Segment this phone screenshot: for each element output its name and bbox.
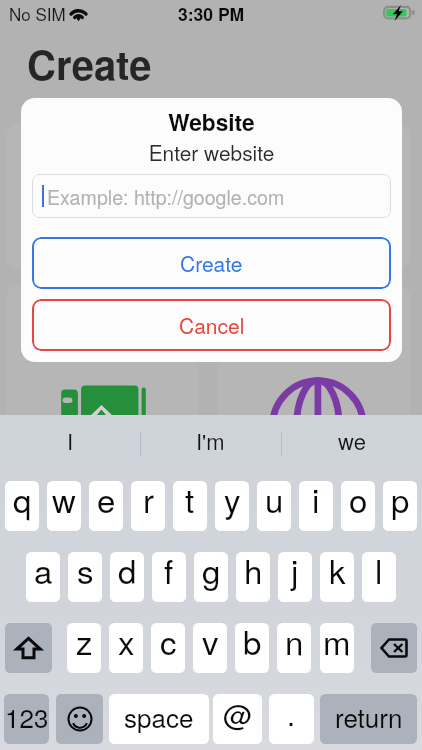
- staticText: a: [34, 552, 53, 593]
- staticText: I'm: [196, 425, 225, 457]
- staticText: 123: [5, 698, 49, 735]
- button[interactable]: l: [362, 552, 396, 602]
- button[interactable]: c: [151, 623, 185, 673]
- button[interactable]: I: [0, 415, 140, 459]
- staticText: Create: [180, 248, 243, 278]
- staticText: Enter website: [21, 137, 402, 167]
- button[interactable]: k: [320, 552, 354, 602]
- staticText: c: [160, 623, 177, 664]
- button[interactable]: y: [215, 481, 249, 531]
- button[interactable]: Backspace: [371, 623, 417, 673]
- staticText: No SIM: [9, 1, 66, 25]
- staticText: l: [375, 552, 383, 593]
- staticText: return: [335, 698, 403, 735]
- staticText: u: [265, 481, 284, 522]
- staticText: x: [118, 623, 135, 664]
- button[interactable]: [6, 124, 199, 270]
- button[interactable]: a: [26, 552, 60, 602]
- staticText: @: [223, 694, 253, 735]
- staticText: n: [285, 623, 304, 664]
- staticText: r: [143, 481, 154, 522]
- button[interactable]: Create: [32, 237, 391, 289]
- button[interactable]: t: [173, 481, 207, 531]
- staticText: f: [164, 552, 174, 593]
- staticText: I: [67, 425, 74, 457]
- button[interactable]: i: [299, 481, 333, 531]
- button[interactable]: w: [47, 481, 81, 531]
- button[interactable]: I'm: [140, 415, 281, 459]
- button[interactable]: q: [5, 481, 39, 531]
- button[interactable]: 123: [4, 694, 49, 744]
- staticText: w: [52, 481, 76, 522]
- button[interactable]: b: [235, 623, 269, 673]
- button[interactable]: z: [67, 623, 101, 673]
- staticText: Example: http://google.com: [47, 182, 285, 210]
- staticText: Create: [27, 35, 152, 92]
- button[interactable]: n: [277, 623, 311, 673]
- button[interactable]: j: [278, 552, 312, 602]
- button[interactable]: g: [194, 552, 228, 602]
- staticText: d: [118, 552, 137, 593]
- button[interactable]: [6, 285, 199, 431]
- button[interactable]: [217, 124, 411, 270]
- button[interactable]: v: [193, 623, 227, 673]
- button[interactable]: return: [320, 694, 417, 744]
- button[interactable]: .: [269, 694, 314, 744]
- staticText: y: [224, 481, 241, 522]
- button[interactable]: o: [341, 481, 375, 531]
- staticText: g: [202, 552, 221, 593]
- button[interactable]: [217, 285, 411, 431]
- button[interactable]: d: [110, 552, 144, 602]
- button[interactable]: f: [152, 552, 186, 602]
- staticText: we: [338, 425, 366, 457]
- staticText: j: [291, 552, 299, 593]
- button[interactable]: u: [257, 481, 291, 531]
- button[interactable]: we: [281, 415, 422, 459]
- staticText: b: [243, 623, 262, 664]
- staticText: v: [202, 623, 219, 664]
- button[interactable]: Example: http://google.com: [32, 174, 391, 218]
- button[interactable]: m: [320, 623, 354, 673]
- button[interactable]: Emoji: [56, 694, 103, 744]
- staticText: i: [312, 481, 320, 522]
- staticText: t: [185, 481, 195, 522]
- staticText: p: [391, 481, 410, 522]
- staticText: m: [323, 623, 351, 664]
- staticText: .: [287, 694, 296, 735]
- button[interactable]: space: [109, 694, 209, 744]
- staticText: 3:30 PM: [178, 1, 245, 26]
- staticText: k: [329, 552, 346, 593]
- button[interactable]: s: [68, 552, 102, 602]
- staticText: z: [76, 623, 93, 664]
- button[interactable]: r: [131, 481, 165, 531]
- staticText: space: [124, 698, 194, 735]
- button[interactable]: h: [236, 552, 270, 602]
- button[interactable]: x: [109, 623, 143, 673]
- staticText: e: [97, 481, 116, 522]
- staticText: o: [349, 481, 368, 522]
- button[interactable]: p: [383, 481, 417, 531]
- staticText: s: [77, 552, 94, 593]
- staticText: Website: [21, 105, 402, 138]
- button[interactable]: @: [213, 694, 262, 744]
- staticText: Cancel: [179, 310, 245, 340]
- staticText: h: [244, 552, 263, 593]
- button[interactable]: Shift: [5, 623, 52, 673]
- button[interactable]: e: [89, 481, 123, 531]
- staticText: q: [13, 481, 32, 522]
- button[interactable]: Cancel: [32, 299, 391, 351]
